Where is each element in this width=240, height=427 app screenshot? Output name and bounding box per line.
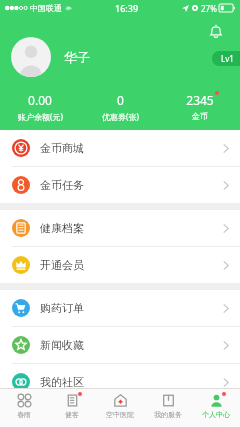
staticText: 账户余额(元) <box>18 111 63 122</box>
staticText: 健客 <box>65 410 79 419</box>
staticText: 金币 <box>192 111 208 121</box>
button[interactable]: 金币商城 <box>0 130 240 166</box>
staticText: 我的社区 <box>40 375 84 389</box>
staticText: Lv1 <box>221 53 234 64</box>
button[interactable]: 0 <box>80 92 160 122</box>
staticText: 开通会员 <box>40 258 84 272</box>
button[interactable]: Lv1 <box>212 51 240 66</box>
staticText: 春雨 <box>17 410 31 419</box>
staticText: 金币商城 <box>40 141 84 155</box>
staticText: 空中医院 <box>106 410 134 419</box>
button[interactable]: 华子 <box>11 37 90 77</box>
staticText: 0 <box>117 92 124 108</box>
button[interactable]: 2345 <box>160 92 240 121</box>
button[interactable]: 个人中心 <box>192 389 240 427</box>
staticText: 16:39 <box>115 2 139 14</box>
staticText: 2345 <box>186 92 214 108</box>
button[interactable]: 金币任务 <box>0 167 240 203</box>
button[interactable]: 春雨 <box>0 389 48 427</box>
button[interactable]: 开通会员 <box>0 247 240 283</box>
button[interactable]: 0.00 <box>0 92 80 122</box>
staticText: 金币任务 <box>40 178 84 192</box>
button[interactable]: 购药订单 <box>0 290 240 326</box>
staticText: 新闻收藏 <box>40 338 84 352</box>
staticText: 健康档案 <box>40 221 84 235</box>
staticText: 中国联通 <box>30 3 62 13</box>
staticText: 我的服务 <box>154 410 182 419</box>
staticText: 0.00 <box>28 92 52 108</box>
button[interactable]: 健客 <box>48 389 96 427</box>
staticText: 邀请好友 <box>40 407 84 421</box>
button[interactable]: 我的社区 <box>0 364 240 400</box>
button[interactable]: 新闻收藏 <box>0 327 240 363</box>
staticText: 优惠券(张) <box>102 111 139 122</box>
button[interactable]: 我的服务 <box>144 389 192 427</box>
button[interactable]: 健康档案 <box>0 210 240 246</box>
button[interactable]: Notifications <box>204 19 228 43</box>
staticText: 27% <box>201 3 217 14</box>
staticText: 华子 <box>64 49 90 65</box>
staticText: 购药订单 <box>40 301 84 315</box>
button[interactable]: 空中医院 <box>96 389 144 427</box>
button[interactable]: 邀请好友 <box>0 401 240 427</box>
staticText: 个人中心 <box>202 410 230 419</box>
